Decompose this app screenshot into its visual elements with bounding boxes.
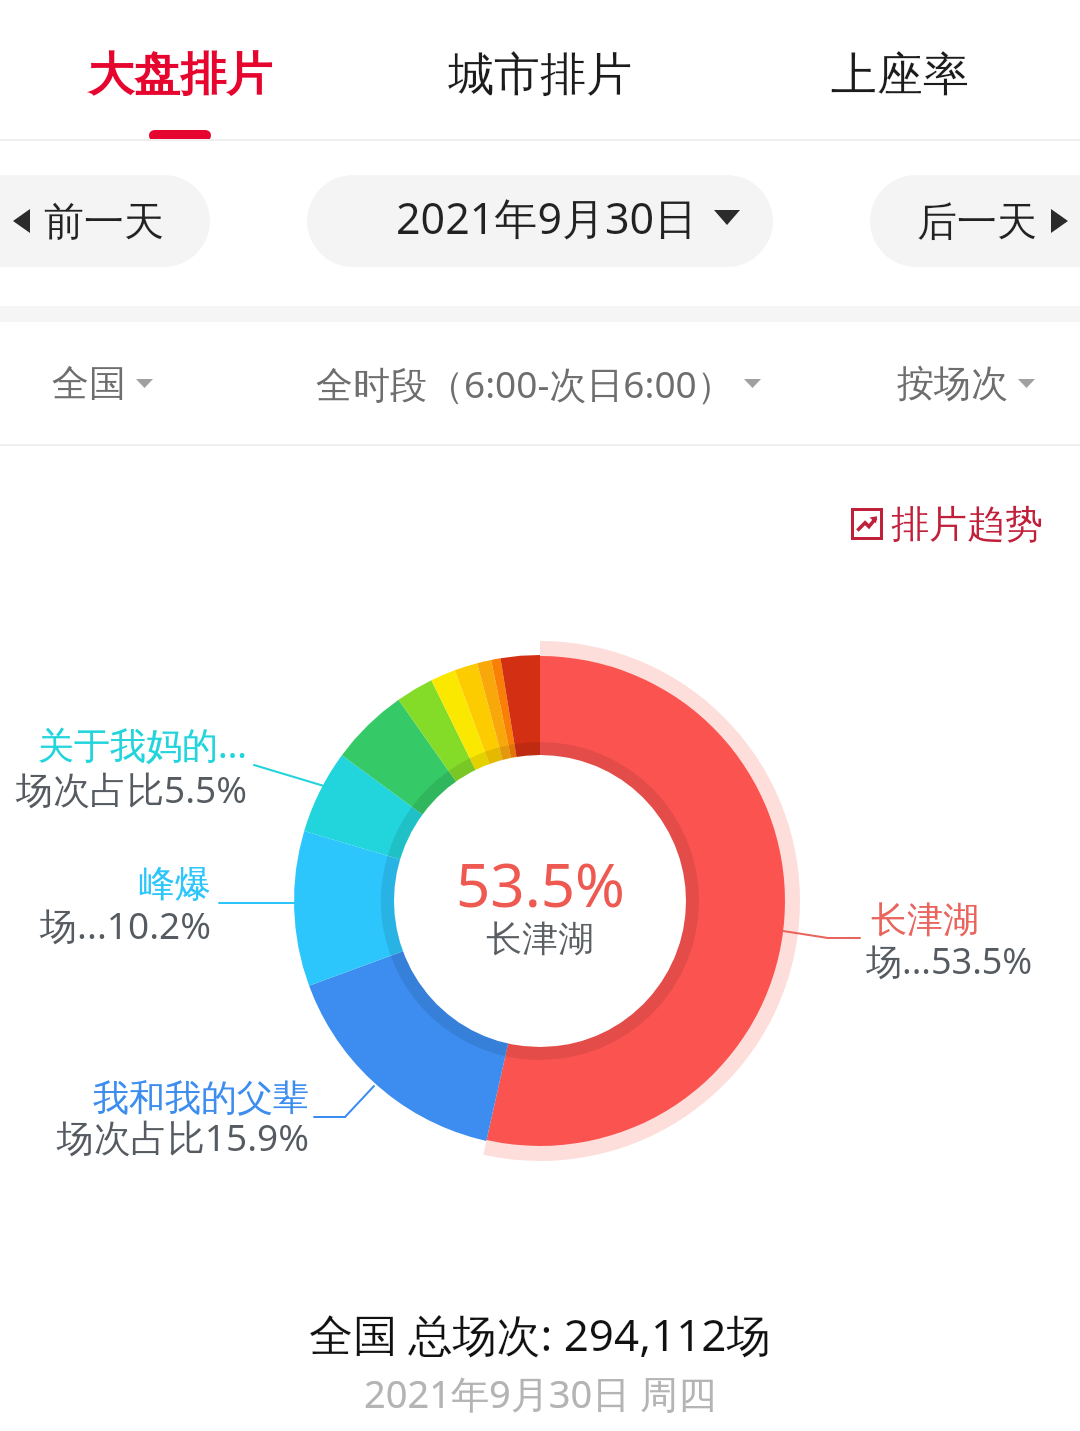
staticText: 2021年9月30日 bbox=[396, 188, 698, 247]
other: 排片占比环形图 bbox=[0, 0, 1080, 1431]
staticText: 长津湖 bbox=[871, 897, 979, 942]
button[interactable]: 选择日期 2021年9月30日 bbox=[307, 175, 773, 267]
staticText: 全国 总场次: 294,112场 bbox=[309, 1304, 771, 1364]
staticText: 长津湖 bbox=[486, 916, 594, 961]
staticText: 我和我的父辈 bbox=[0, 1075, 309, 1120]
button[interactable]: 大盘排片 bbox=[0, 0, 360, 139]
staticText: 53.5% bbox=[456, 843, 625, 925]
button[interactable]: 按场次 bbox=[897, 346, 1035, 421]
button[interactable]: 排片趋势 bbox=[845, 490, 1049, 558]
staticText: 场次占比5.5% bbox=[0, 763, 247, 814]
staticText: 全时段（6:00-次日6:00） bbox=[316, 358, 734, 409]
staticText: 城市排片 bbox=[448, 46, 632, 104]
staticText: 峰爆 bbox=[0, 861, 211, 906]
staticText: 全国 bbox=[52, 360, 126, 407]
staticText: 上座率 bbox=[831, 46, 969, 104]
staticText: 排片趋势 bbox=[891, 500, 1043, 548]
staticText: 场...53.5% bbox=[866, 936, 1033, 985]
staticText: 后一天 bbox=[917, 196, 1037, 246]
staticText: 2021年9月30日 周四 bbox=[364, 1367, 717, 1419]
button[interactable]: 城市排片 bbox=[360, 0, 720, 139]
button[interactable]: 上座率 bbox=[720, 0, 1080, 139]
staticText: 前一天 bbox=[44, 196, 164, 246]
button[interactable]: 全国 bbox=[52, 346, 153, 421]
button[interactable]: 前一天 bbox=[0, 175, 210, 267]
staticText: 大盘排片 bbox=[88, 46, 272, 104]
button[interactable]: 后一天 bbox=[870, 175, 1080, 267]
staticText: 按场次 bbox=[897, 360, 1008, 407]
button[interactable]: 全时段（6:00-次日6:00） bbox=[316, 344, 761, 423]
staticText: 场...10.2% bbox=[0, 899, 211, 950]
staticText: 关于我妈的... bbox=[0, 720, 247, 769]
staticText: 场次占比15.9% bbox=[0, 1111, 309, 1162]
